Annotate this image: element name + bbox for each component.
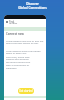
staticText: Plan trips, make new friends and discove…: [6, 55, 33, 70]
staticText: Travel guides help you to find out about…: [6, 39, 45, 45]
staticText: Global Connections: [18, 6, 47, 10]
staticText: Local experts share the hidden gems of e…: [6, 49, 45, 55]
staticText: Connect now: [6, 32, 24, 36]
staticText: Discover: [26, 2, 39, 6]
button[interactable]: Back: [6, 20, 20, 24]
button[interactable]: Get started: [18, 88, 34, 94]
staticText: Find guides: [9, 20, 20, 24]
staticText: Get started: [19, 89, 33, 93]
